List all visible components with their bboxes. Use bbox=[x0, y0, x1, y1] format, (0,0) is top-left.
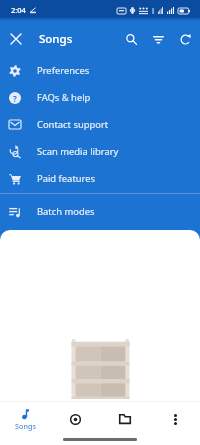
button[interactable]: Contact support bbox=[0, 111, 200, 138]
button[interactable]: Batch modes bbox=[0, 198, 200, 225]
staticText: Preferences bbox=[37, 64, 90, 77]
staticText: Paid features bbox=[37, 172, 96, 185]
button[interactable]: Preferences bbox=[0, 57, 200, 84]
staticText: Songs bbox=[15, 421, 36, 431]
button[interactable]: Scan media library bbox=[0, 138, 200, 165]
button[interactable]: Refresh bbox=[172, 21, 199, 57]
button[interactable]: Folders bbox=[100, 402, 150, 434]
button[interactable]: Close bbox=[0, 21, 32, 57]
button[interactable]: More options bbox=[150, 402, 200, 434]
button[interactable]: Paid features bbox=[0, 165, 200, 192]
button[interactable]: Filter bbox=[145, 21, 172, 57]
button[interactable]: ? bbox=[0, 84, 200, 111]
button[interactable]: Search bbox=[118, 21, 145, 57]
staticText: Batch modes bbox=[37, 205, 95, 218]
staticText: ? bbox=[13, 93, 17, 104]
staticText: Contact support bbox=[37, 118, 109, 131]
button[interactable]: Songs bbox=[0, 402, 50, 434]
staticText: Scan media library bbox=[37, 145, 119, 158]
button[interactable]: Albums bbox=[50, 402, 100, 434]
staticText: FAQs & help bbox=[37, 91, 91, 104]
staticText: Songs bbox=[39, 31, 73, 47]
staticText: 2:04 bbox=[11, 5, 26, 15]
